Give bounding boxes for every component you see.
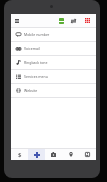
button[interactable]: Balance xyxy=(11,149,28,160)
button[interactable]: Mobile number xyxy=(11,28,96,41)
button[interactable]: Camera xyxy=(45,149,62,160)
staticText: Services menu xyxy=(24,74,48,79)
button[interactable]: Voicemail xyxy=(11,42,96,55)
button[interactable]: Dial pad xyxy=(82,14,93,27)
button[interactable]: Services menu xyxy=(11,70,96,83)
staticText: Ringback tone xyxy=(24,60,48,65)
button[interactable]: Website xyxy=(11,84,96,97)
staticText: Mobile number xyxy=(24,32,50,37)
staticText: Voicemail xyxy=(24,46,40,51)
staticText: Website xyxy=(24,88,38,93)
staticText: $ xyxy=(18,151,22,159)
button[interactable]: Places xyxy=(62,149,79,160)
button[interactable]: Add xyxy=(28,149,45,160)
button[interactable]: Gallery xyxy=(79,149,96,160)
button[interactable]: Ringback tone xyxy=(11,56,96,69)
button[interactable]: Open navigation menu xyxy=(12,14,22,27)
button[interactable]: Compare arrows xyxy=(68,14,79,27)
button[interactable]: Data connection xyxy=(56,14,67,27)
